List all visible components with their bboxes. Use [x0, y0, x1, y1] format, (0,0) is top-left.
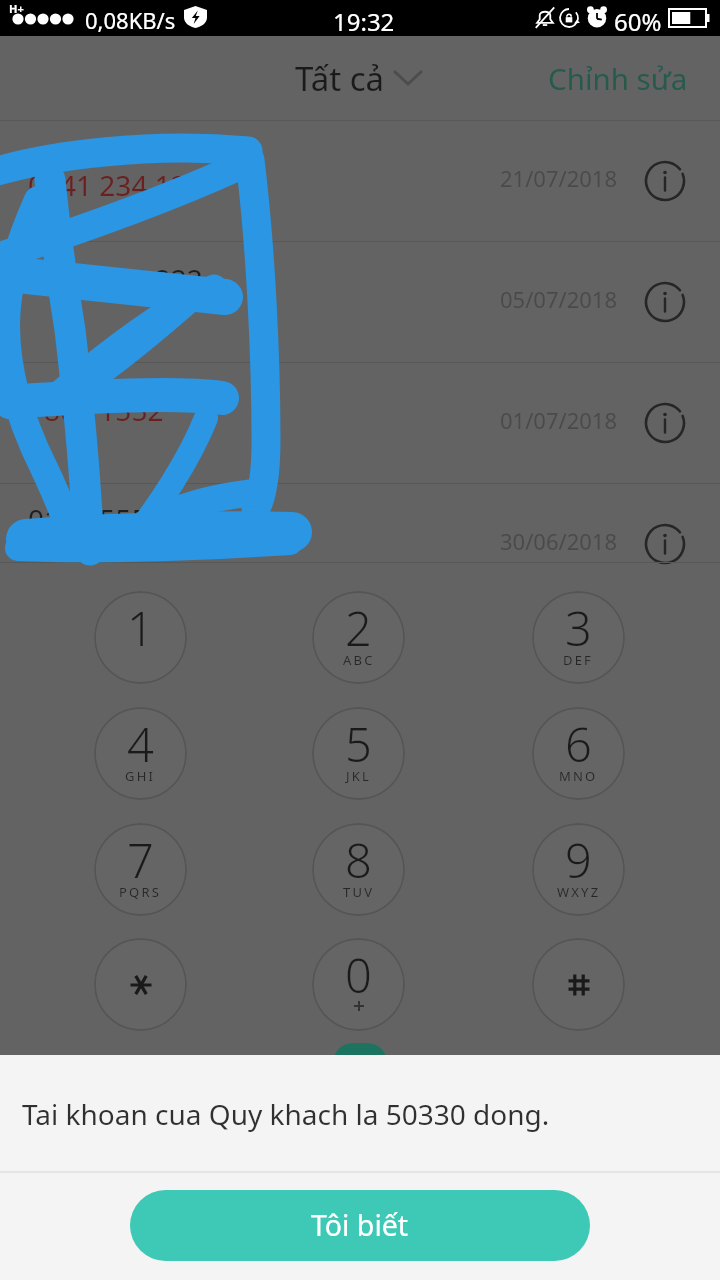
staticText: Tôi biết [311, 1206, 409, 1245]
staticText: 21/07/2018 [500, 163, 618, 193]
staticText: 8 [345, 828, 372, 892]
staticText: 1800 1552 [28, 391, 164, 429]
button[interactable]: 2 [312, 591, 405, 684]
staticText: 4 [127, 712, 154, 776]
staticText: 6 [565, 712, 592, 776]
button[interactable]: 0903 888 222 [0, 242, 720, 362]
staticText: WXYZ [557, 883, 601, 901]
staticText: H+ [9, 1, 24, 16]
button[interactable]: 1 [94, 591, 187, 684]
staticText: 19:32 [333, 5, 395, 38]
button[interactable]: 7 [94, 823, 187, 916]
staticText: 0166 555 101 [28, 500, 203, 538]
staticText: TUV [343, 883, 375, 901]
staticText: DEF [563, 651, 594, 669]
staticText: 01/07/2018 [500, 405, 618, 435]
staticText: 30/06/2018 [500, 526, 618, 556]
button[interactable]: Tôi biết [130, 1190, 590, 1261]
staticText: 9 [565, 828, 592, 892]
button[interactable]: 6 [532, 707, 625, 800]
button[interactable]: 0 [312, 938, 405, 1031]
staticText: 5 [345, 712, 372, 776]
staticText: 1 [127, 596, 154, 660]
staticText: 0903 888 222 [28, 260, 203, 298]
button[interactable]: 4 [94, 707, 187, 800]
button[interactable]: 0166 555 101 [0, 484, 720, 604]
staticText: GHI [125, 767, 156, 785]
button[interactable]: 3 [532, 591, 625, 684]
button[interactable]: Call details [641, 157, 689, 205]
staticText: 0,08KB/s [85, 5, 176, 35]
button[interactable]: 1800 1552 [0, 363, 720, 483]
button[interactable]: 9 [532, 823, 625, 916]
button[interactable] [94, 938, 187, 1031]
button[interactable]: Chỉnh sửa [540, 52, 695, 104]
staticText: 2 [345, 596, 372, 660]
staticText: 60% [614, 5, 662, 38]
staticText: Tai khoan cua Quy khach la 50330 dong. [22, 1095, 550, 1133]
staticText: Tất cả [295, 56, 385, 101]
staticText: MNO [559, 767, 598, 785]
button[interactable]: 5 [312, 707, 405, 800]
staticText: Chỉnh sửa [548, 58, 688, 98]
button[interactable]: Call details [641, 399, 689, 447]
button[interactable]: Tất cả [250, 52, 430, 104]
staticText: 0 [345, 943, 372, 1007]
staticText: 7 [127, 828, 154, 892]
button[interactable]: 8 [312, 823, 405, 916]
staticText: PQRS [119, 883, 162, 901]
staticText: ABC [343, 651, 375, 669]
button[interactable]: Call details [641, 520, 689, 568]
staticText: 0941 234 122 [28, 166, 203, 204]
button[interactable]: 0941 234 122 [0, 121, 720, 241]
button[interactable]: Call [333, 1043, 387, 1063]
staticText: 3 [565, 596, 592, 660]
button[interactable]: Call details [641, 278, 689, 326]
button[interactable] [532, 938, 625, 1031]
staticText: 05/07/2018 [500, 284, 618, 314]
staticText: JKL [346, 767, 372, 785]
